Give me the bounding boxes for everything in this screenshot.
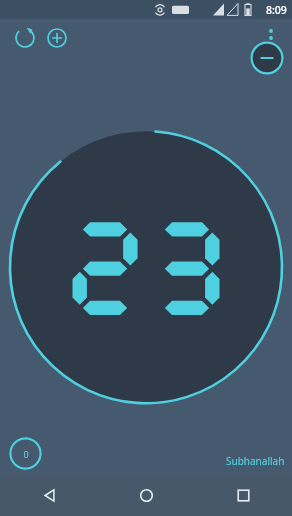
- button[interactable]: Home: [98, 474, 195, 516]
- button[interactable]: 0: [9, 437, 42, 470]
- staticText: Subhanallah: [226, 454, 285, 468]
- button[interactable]: More options: [256, 23, 286, 53]
- staticText: 8:09: [266, 3, 287, 17]
- button[interactable]: Add: [42, 23, 72, 53]
- button[interactable]: Tasbih counter: [0, 57, 292, 474]
- button[interactable]: Back: [0, 474, 98, 516]
- button[interactable]: Reset: [10, 23, 40, 53]
- button[interactable]: Decrease count: [250, 41, 284, 75]
- button[interactable]: Subhanallah: [226, 454, 285, 468]
- button[interactable]: Recent apps: [195, 474, 292, 516]
- staticText: 0: [23, 448, 29, 460]
